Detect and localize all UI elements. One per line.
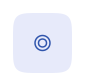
button[interactable]: Record	[13, 13, 72, 73]
